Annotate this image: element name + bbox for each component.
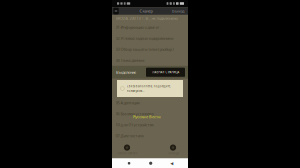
staticText: ГЛАВНАЯ СТРАНИЦА	[151, 70, 179, 74]
staticText: 05 Адаптация	[115, 100, 139, 105]
staticText: 03 Обзор защиты (электрообор.)	[115, 47, 173, 52]
staticText: ◀	[170, 161, 173, 165]
button[interactable]: Сервис сканера	[112, 142, 142, 158]
button[interactable]: 05 Адаптация	[112, 97, 188, 108]
button[interactable]: Помощь	[158, 142, 188, 158]
staticText: 06 Базовая установка	[115, 111, 153, 116]
button[interactable]: Home	[146, 159, 155, 168]
button[interactable]: Back	[168, 159, 175, 167]
staticText: Выход	[172, 8, 184, 14]
staticText: Выделение	[116, 70, 136, 75]
button[interactable]: 10 для (1) устройства	[112, 119, 188, 130]
button[interactable]: ГЛАВНАЯ СТРАНИЦА	[146, 68, 185, 77]
button[interactable]: 01 Информация о двигат.	[112, 22, 188, 33]
staticText: Связь выполнена, подождите,	[127, 84, 171, 88]
staticText: 07 Диагностика	[115, 133, 143, 138]
button[interactable]: Recents	[125, 159, 133, 167]
staticText: Сканер	[139, 8, 152, 14]
button[interactable]: Выделение	[112, 70, 136, 75]
button[interactable]: 07 Диагностика	[112, 130, 188, 141]
staticText: SKODA 230.13 г. В., не подключено	[115, 16, 177, 21]
button[interactable]: Выход	[172, 8, 188, 14]
button[interactable]: 03 Обзор защиты (электрообор.)	[112, 44, 188, 55]
staticText: 10 для (1) устройства	[115, 122, 153, 127]
staticText: 02 Угловая задача кодированием	[115, 36, 173, 41]
button[interactable]: 02 Угловая задача кодированием	[112, 33, 188, 44]
staticText: 04 Точка данных	[115, 58, 144, 63]
staticText: 01 Информация о двигат.	[115, 25, 160, 30]
button[interactable]: 06 Базовая установка	[112, 108, 188, 119]
button[interactable]: Menu	[112, 7, 120, 15]
staticText: пожалуйста...	[127, 89, 145, 93]
staticText: Русские Вести	[133, 114, 161, 119]
button[interactable]: 04 Точка данных	[112, 55, 188, 66]
